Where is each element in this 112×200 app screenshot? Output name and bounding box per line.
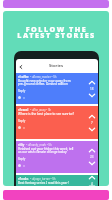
staticText: r/diy: [18, 143, 25, 147]
staticText: 23: [90, 155, 94, 159]
button[interactable]: Downvote: [87, 161, 96, 166]
staticText: Reply: [18, 89, 26, 93]
button[interactable]: r/books: [16, 175, 98, 186]
button[interactable]: Upvote: [87, 114, 96, 119]
staticText: Best fantasy series I read this year!: [18, 181, 69, 185]
staticText: FOLLOW THE LATEST STORIES: [17, 24, 96, 40]
button[interactable]: r/coffee: [16, 73, 98, 104]
staticText: r/travel: [18, 108, 29, 112]
staticText: • u/brew_master • 5h: [30, 75, 57, 79]
button[interactable]: Upvote: [87, 148, 96, 153]
button[interactable]: Upvote: [87, 175, 96, 180]
button[interactable]: Back: [16, 62, 25, 71]
staticText: 7: [91, 121, 93, 125]
staticText: r/books: [18, 177, 29, 181]
staticText: Reply: [18, 119, 26, 123]
staticText: • u/handy_mark • 5h: [26, 143, 52, 147]
staticText: • u/far_away • 5h: [30, 108, 52, 112]
staticText: 4: [91, 182, 93, 186]
staticText: 18: [90, 87, 94, 91]
button[interactable]: Downvote: [87, 127, 96, 132]
staticText: Where is the best place to see sunrise?: [18, 112, 75, 116]
staticText: • u/page_turner • 5h: [30, 177, 56, 181]
button[interactable]: Downvote: [87, 93, 96, 98]
staticText: Reply: [18, 157, 26, 161]
button[interactable]: r/travel: [16, 106, 98, 139]
staticText: Finished out your fridge this week, tell…: [18, 147, 74, 154]
staticText: r/coffee: [18, 75, 29, 79]
button[interactable]: r/diy: [16, 141, 98, 173]
staticText: Stories: [49, 63, 64, 69]
button[interactable]: Upvote: [87, 80, 96, 85]
staticText: Bought new grinder, now away from pre-gr…: [18, 79, 71, 86]
